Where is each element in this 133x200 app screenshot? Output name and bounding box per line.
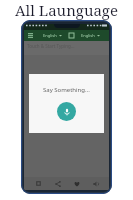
staticText: Say Something...: [43, 86, 90, 94]
staticText: English: [81, 33, 95, 38]
staticText: Touch & Start Typing...: [27, 43, 75, 49]
button[interactable]: Start voice input: [57, 102, 76, 121]
button[interactable]: English: [37, 33, 68, 38]
button[interactable]: Share: [53, 179, 62, 188]
staticText: English: [43, 33, 57, 38]
staticText: All Launguage Translater: [0, 0, 133, 20]
button[interactable]: Speak: [91, 179, 100, 188]
button[interactable]: English: [75, 33, 106, 38]
button[interactable]: Swap languages: [68, 32, 75, 39]
button[interactable]: Favourite: [72, 179, 81, 188]
button[interactable]: Menu: [27, 32, 34, 39]
button[interactable]: Copy: [34, 179, 43, 188]
